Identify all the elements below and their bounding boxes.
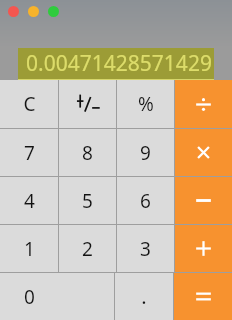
button[interactable]: Equals [174,273,232,320]
button[interactable]: 4 [0,177,58,224]
button[interactable]: 3 [117,225,174,272]
button[interactable]: C [0,80,58,128]
button[interactable]: 9 [117,129,174,176]
button[interactable]: 2 [59,225,116,272]
staticText: C [23,91,36,117]
staticText: 2 [82,236,93,262]
staticText: 0 [24,284,35,310]
button[interactable]: Divide [175,80,232,128]
button[interactable]: Multiply [175,129,232,176]
button[interactable]: 0 [0,273,114,320]
button[interactable]: 8 [59,129,116,176]
button[interactable]: Toggle sign [59,80,116,128]
button[interactable]: % [117,80,174,128]
staticText: 3 [140,236,151,262]
staticText: . [141,283,147,310]
button[interactable]: Maximize window [48,6,59,17]
staticText: 6 [140,188,151,214]
staticText: % [138,91,154,117]
staticText: 7 [24,140,35,166]
button[interactable]: 1 [0,225,58,272]
button[interactable]: . [115,273,173,320]
button[interactable]: Minimize window [28,6,39,17]
staticText: 1 [24,236,35,262]
staticText: 9 [140,140,151,166]
button[interactable]: Add [175,225,232,272]
button[interactable]: 5 [59,177,116,224]
button[interactable]: Close window [8,6,19,17]
staticText: 4 [24,188,35,214]
button[interactable]: 7 [0,129,58,176]
staticText: 8 [82,140,93,166]
staticText: 0.00471428571429 [26,49,212,78]
staticText: 5 [82,188,93,214]
button[interactable]: 6 [117,177,174,224]
button[interactable]: Subtract [175,177,232,224]
